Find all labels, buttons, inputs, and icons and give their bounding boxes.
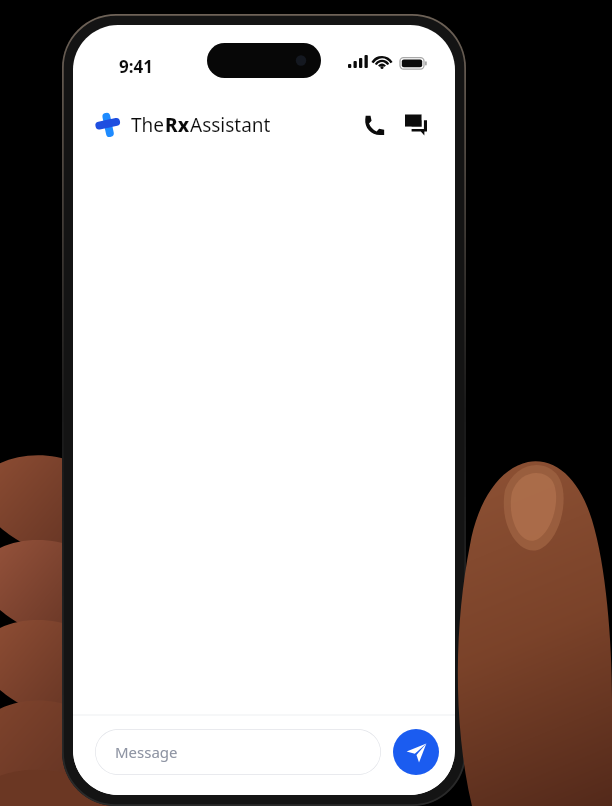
button[interactable]: Messages: [399, 108, 433, 142]
staticText: Rx: [165, 112, 190, 138]
staticText: Assistant: [190, 112, 271, 138]
button[interactable]: Message: [95, 729, 381, 775]
button[interactable]: Call: [357, 108, 391, 142]
staticText: Message: [115, 742, 178, 762]
staticText: 9:41: [119, 55, 153, 78]
button[interactable]: Send: [393, 729, 439, 775]
staticText: The: [131, 112, 165, 138]
